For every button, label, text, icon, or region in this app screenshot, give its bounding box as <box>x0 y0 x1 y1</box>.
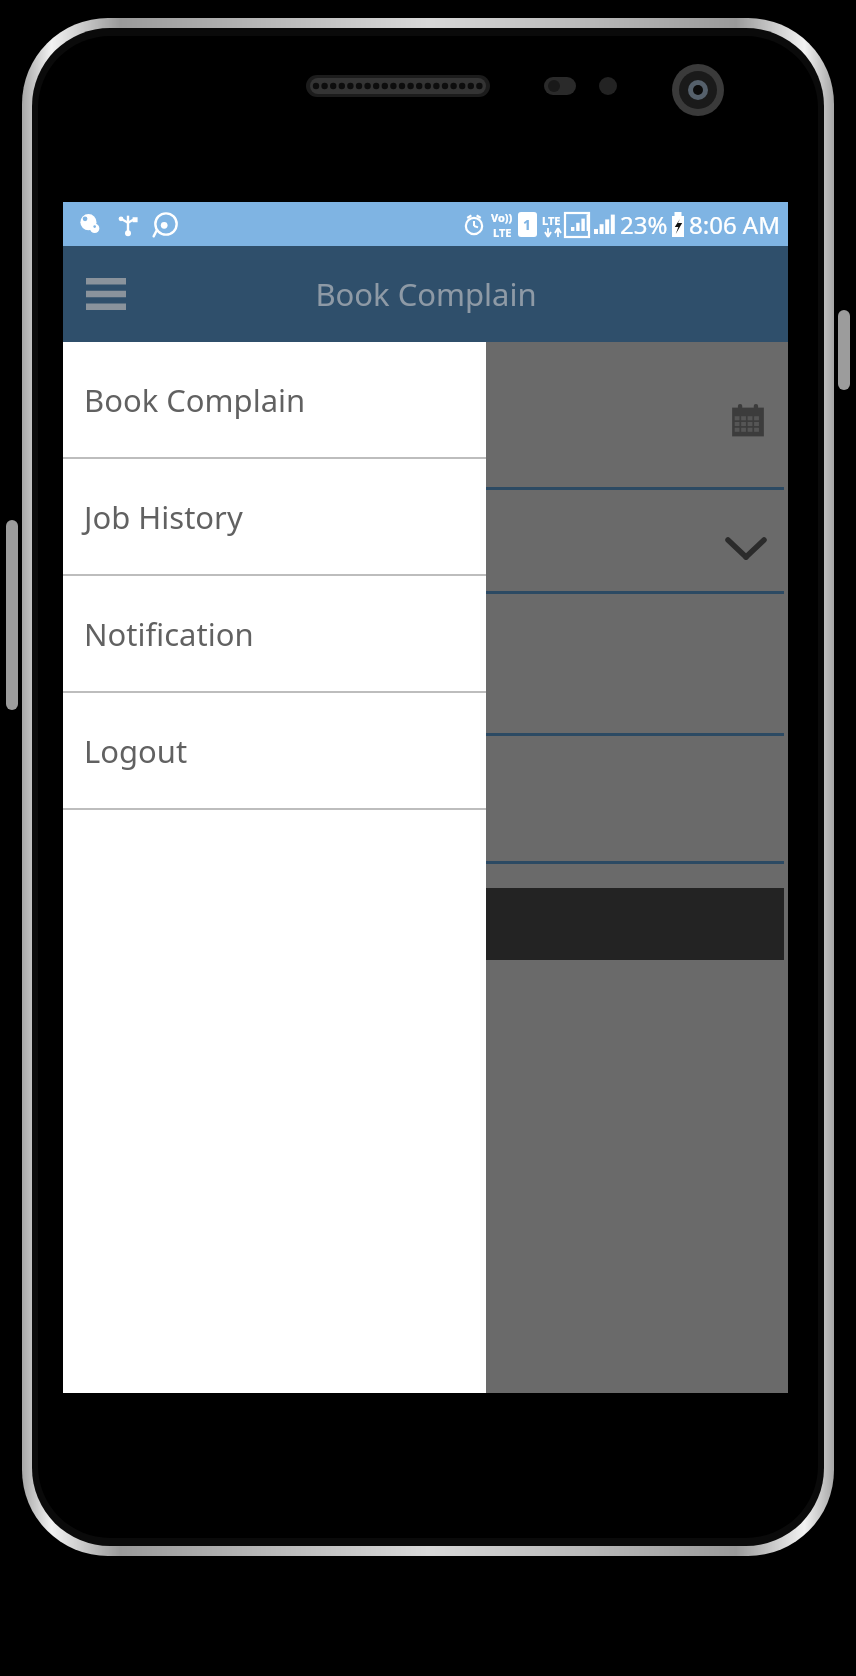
staticText: 23% <box>620 208 668 241</box>
staticText: LTE <box>542 213 561 228</box>
staticText: 8:06 AM <box>689 208 780 241</box>
button[interactable] <box>67 888 784 960</box>
button[interactable]: Job History <box>63 459 486 574</box>
staticText: LTE <box>493 225 512 240</box>
staticText: 1 <box>523 215 532 234</box>
button[interactable]: Notification <box>63 576 486 691</box>
button[interactable] <box>63 736 788 864</box>
staticText: Logout <box>84 730 188 772</box>
staticText: Job History <box>84 496 243 538</box>
staticText: Notification <box>84 613 254 655</box>
staticText: Vo)) <box>491 210 513 225</box>
button[interactable] <box>63 594 788 736</box>
button[interactable]: Open navigation drawer <box>75 263 137 325</box>
staticText: Book Complain <box>315 273 537 315</box>
button[interactable] <box>63 342 788 490</box>
staticText: Book Complain <box>84 379 306 421</box>
button[interactable]: Logout <box>63 693 486 808</box>
button[interactable]: Book Complain <box>63 342 486 457</box>
button[interactable] <box>63 490 788 594</box>
